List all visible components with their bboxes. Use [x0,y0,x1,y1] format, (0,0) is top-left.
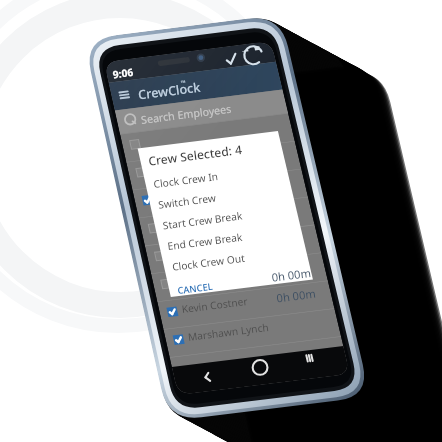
button[interactable]: CrewClock app phone mockup [0,0,442,442]
